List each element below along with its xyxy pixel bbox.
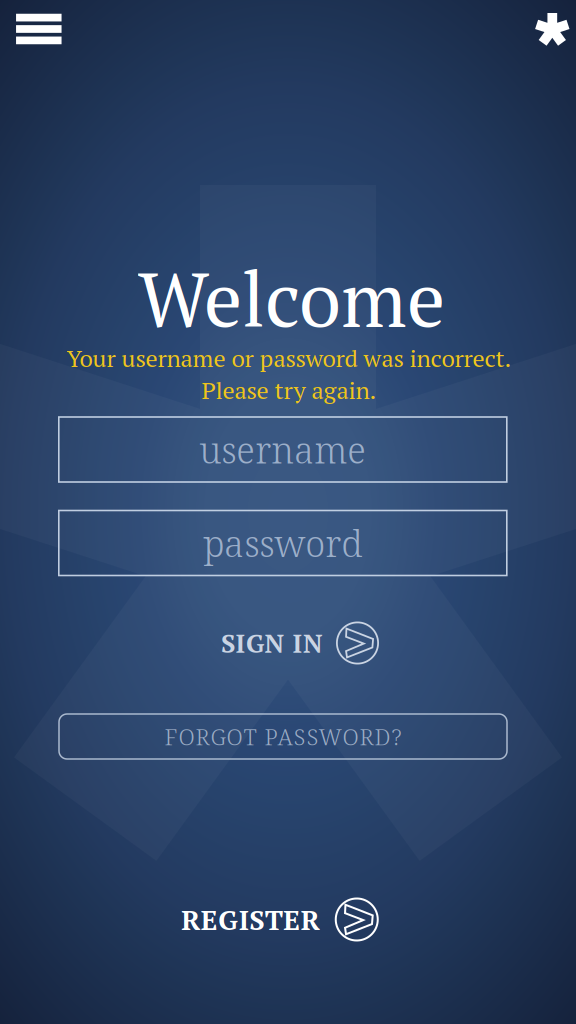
button[interactable]: REGISTER (181, 897, 379, 941)
button[interactable]: Help (536, 13, 569, 46)
staticText: Welcome (138, 248, 445, 348)
staticText: username (199, 425, 366, 474)
staticText: FORGOT PASSWORD? (164, 721, 401, 752)
staticText: Your username or password was incorrect. (66, 342, 511, 374)
staticText: REGISTER (181, 901, 320, 938)
staticText: Please try again. (201, 374, 376, 406)
button[interactable]: Menu (16, 14, 61, 44)
staticText: SIGN IN (221, 626, 323, 660)
staticText: password (203, 518, 362, 567)
button[interactable]: SIGN IN (221, 621, 379, 664)
button[interactable]: FORGOT PASSWORD? (59, 714, 507, 759)
